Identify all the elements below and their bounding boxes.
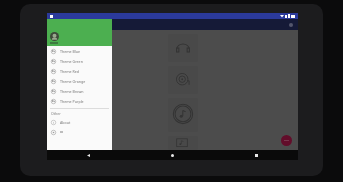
button[interactable]: Theme Orange: [47, 76, 112, 86]
button[interactable]: Play: [281, 135, 292, 146]
button[interactable]: Theme Brown: [47, 86, 112, 96]
button[interactable]: Recent apps: [214, 150, 298, 160]
staticText: Theme Purple: [60, 99, 84, 104]
staticText: Theme Blue: [60, 49, 81, 54]
button[interactable]: Back: [47, 150, 130, 160]
staticText: Theme Orange: [60, 79, 86, 84]
button[interactable]: Media item 3: [168, 98, 198, 132]
button[interactable]: Theme Green: [47, 56, 112, 66]
staticText: Other: [51, 111, 61, 116]
button[interactable]: Media item 2: [168, 66, 198, 94]
button[interactable]: About: [47, 117, 112, 127]
button[interactable]: Theme Blue: [47, 46, 112, 56]
button[interactable]: Media item 4: [168, 136, 198, 150]
staticText: Theme Red: [60, 69, 80, 74]
button[interactable]: Theme Purple: [47, 96, 112, 106]
button[interactable]: Theme Red: [47, 66, 112, 76]
button[interactable]: Home: [130, 150, 214, 160]
button[interactable]: Media item 1: [168, 34, 198, 62]
button[interactable]: Overflow menu: [289, 23, 293, 27]
staticText: Theme Brown: [60, 89, 84, 94]
button[interactable]: [47, 19, 112, 46]
staticText: About: [60, 120, 71, 125]
button[interactable]: [47, 127, 112, 137]
staticText: Theme Green: [60, 59, 83, 64]
